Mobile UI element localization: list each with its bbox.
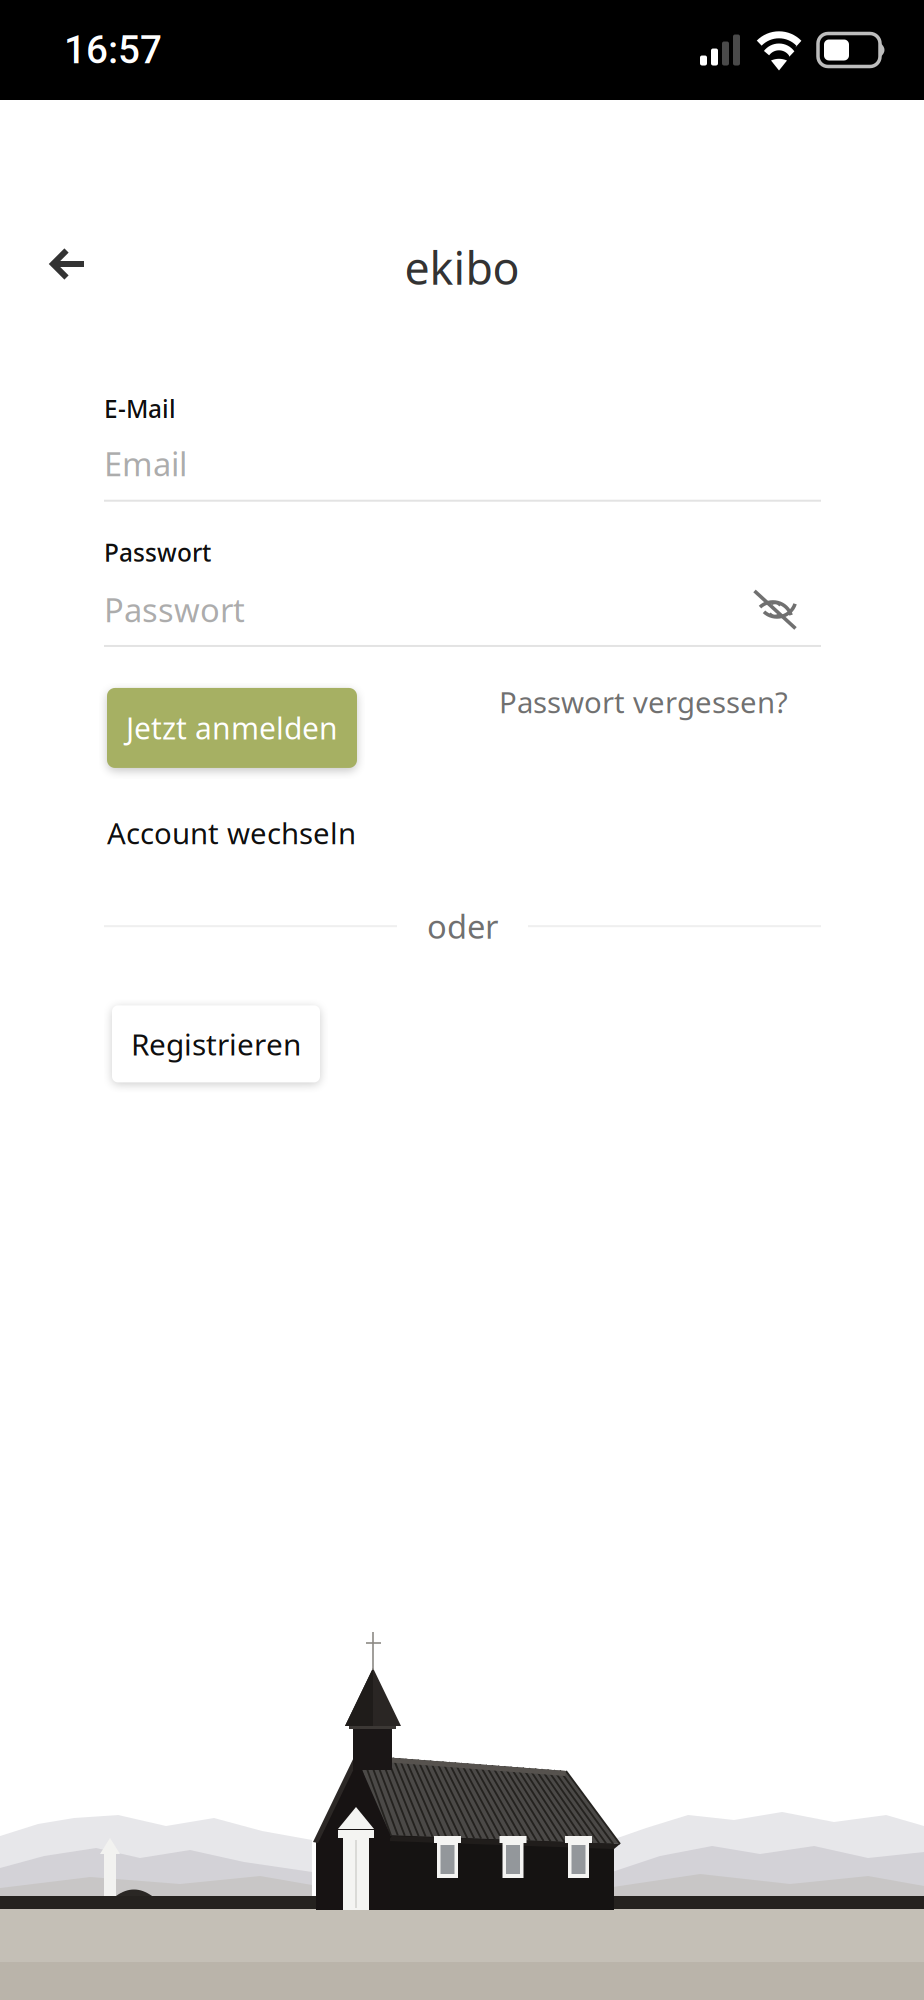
button[interactable]: Passwort vergessen? <box>499 681 821 722</box>
staticText: E-Mail <box>104 392 176 425</box>
staticText: ekibo <box>404 237 519 298</box>
staticText: Account wechseln <box>107 813 356 853</box>
staticText: 16:57 <box>64 27 162 73</box>
button[interactable]: Back <box>0 100 137 312</box>
staticText: oder <box>427 904 498 948</box>
staticText: Passwort <box>104 587 245 632</box>
staticText: Passwort <box>104 536 211 569</box>
button[interactable]: Show password <box>748 587 821 632</box>
button[interactable]: Account wechseln <box>104 813 356 853</box>
staticText: Registrieren <box>131 1024 301 1064</box>
staticText: Jetzt anmelden <box>126 707 338 748</box>
button[interactable]: Registrieren <box>112 1005 320 1082</box>
staticText: Email <box>104 441 187 486</box>
button[interactable]: Jetzt anmelden <box>107 688 357 768</box>
staticText: Passwort vergessen? <box>499 682 788 722</box>
